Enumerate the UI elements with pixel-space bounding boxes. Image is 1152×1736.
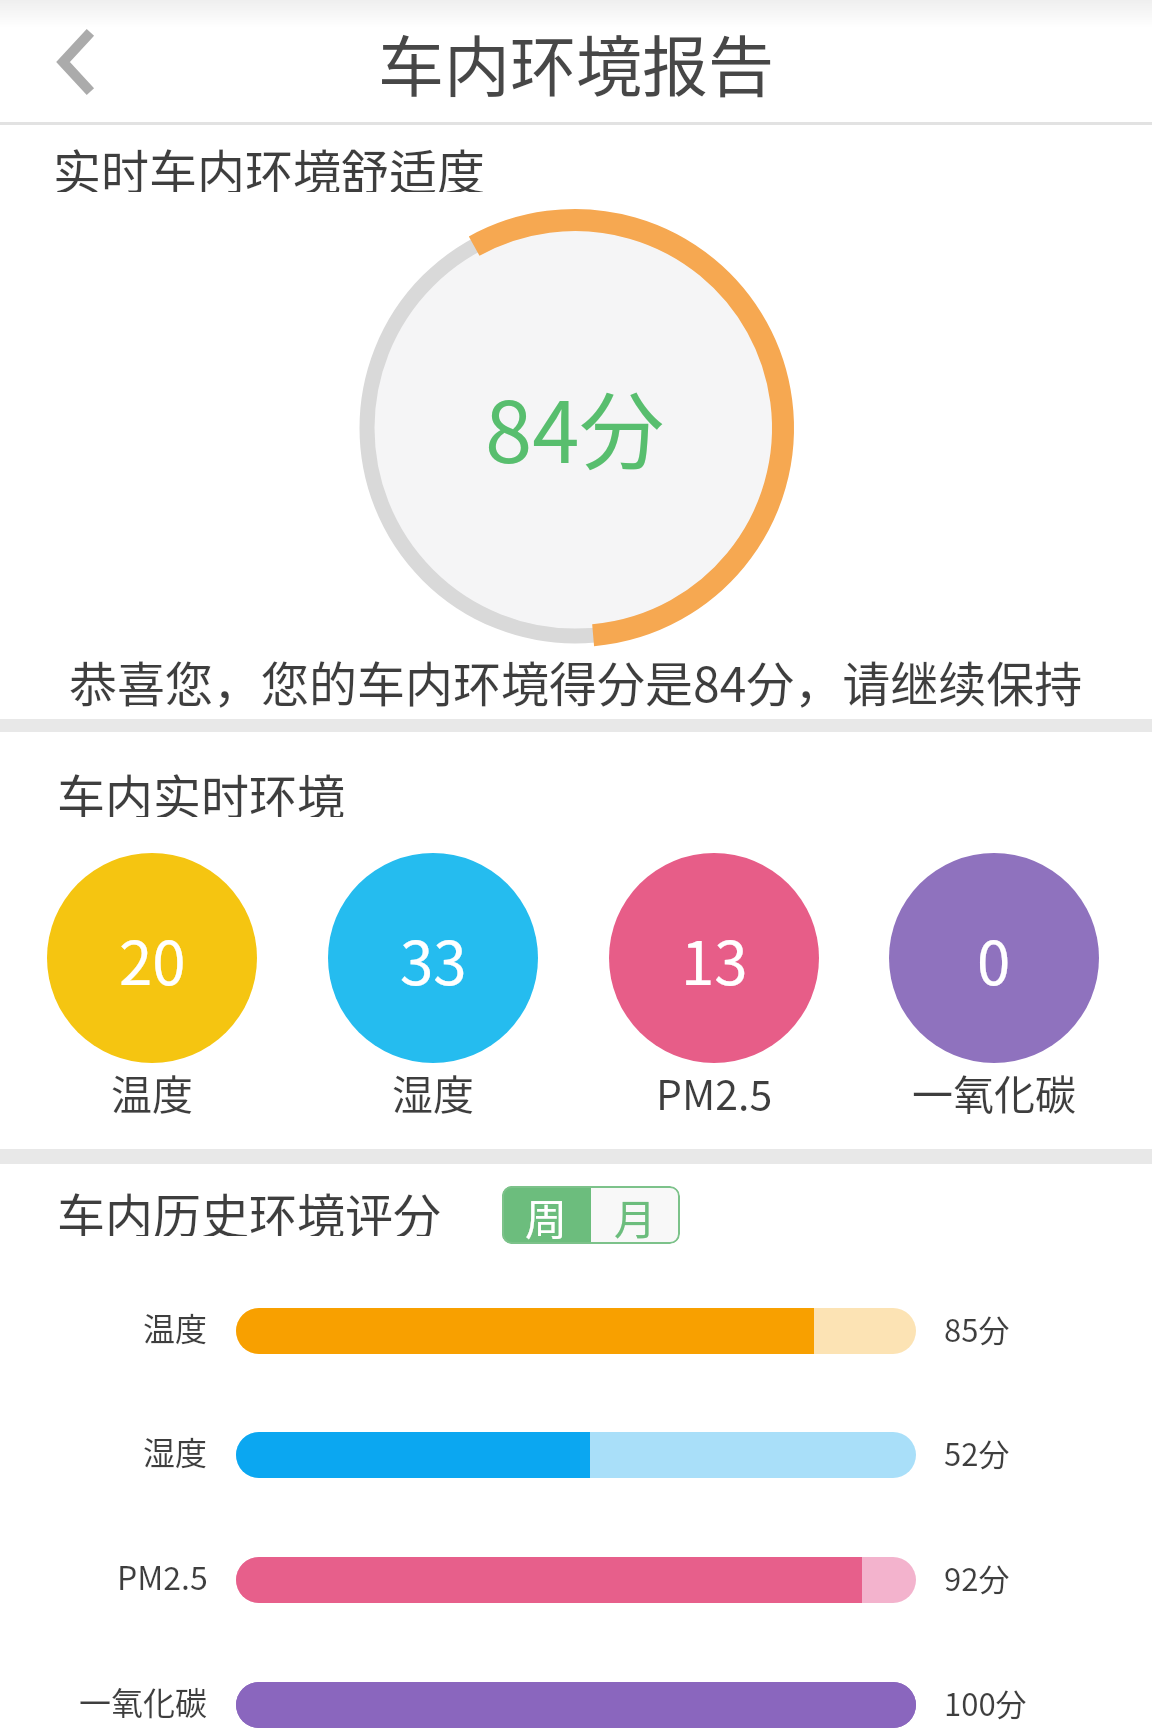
staticText: 周 bbox=[525, 1186, 568, 1244]
button[interactable]: 周 bbox=[502, 1186, 591, 1244]
staticText: 湿度 bbox=[392, 1062, 474, 1114]
staticText: PM2.5 bbox=[117, 1553, 208, 1599]
staticText: 恭喜您，您的车内环境得分是84分，请继续保持 bbox=[69, 646, 1083, 710]
staticText: 温度 bbox=[111, 1062, 193, 1114]
staticText: 20 bbox=[119, 915, 186, 1002]
staticText: 车内环境报告 bbox=[378, 14, 774, 110]
staticText: 84分 bbox=[485, 364, 665, 487]
staticText: 92分 bbox=[944, 1555, 1010, 1600]
staticText: 85分 bbox=[944, 1306, 1010, 1351]
button[interactable]: 月 bbox=[591, 1186, 680, 1244]
staticText: 一氧化碳 bbox=[79, 1678, 208, 1724]
staticText: 湿度 bbox=[143, 1428, 208, 1474]
staticText: 33 bbox=[400, 915, 467, 1002]
staticText: 实时车内环境舒适度 bbox=[53, 134, 486, 192]
staticText: 100分 bbox=[944, 1680, 1027, 1725]
staticText: 车内实时环境 bbox=[57, 759, 346, 817]
button[interactable] bbox=[20, 10, 130, 114]
staticText: 13 bbox=[681, 915, 748, 1002]
staticText: 一氧化碳 bbox=[912, 1062, 1076, 1114]
staticText: 温度 bbox=[143, 1304, 208, 1350]
staticText: 0 bbox=[977, 915, 1011, 1002]
staticText: 车内历史环境评分 bbox=[57, 1178, 442, 1236]
staticText: PM2.5 bbox=[656, 1062, 773, 1114]
staticText: 52分 bbox=[944, 1430, 1010, 1475]
staticText: 月 bbox=[614, 1186, 657, 1244]
